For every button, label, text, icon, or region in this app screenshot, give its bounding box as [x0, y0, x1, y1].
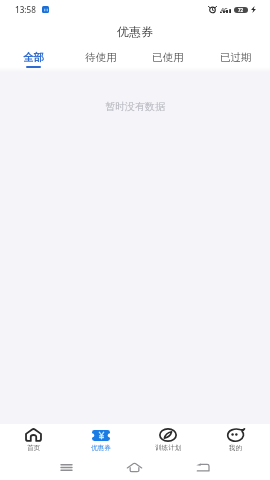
button[interactable]: 已使用 [134, 43, 202, 71]
staticText: 优惠券 [91, 444, 111, 452]
button[interactable]: Home [100, 456, 168, 480]
staticText: 已使用 [152, 51, 184, 64]
staticText: 已过期 [220, 51, 252, 64]
button[interactable]: 待使用 [67, 43, 134, 71]
staticText: 4G [221, 6, 228, 13]
staticText: 13:58 [15, 4, 36, 15]
staticText: 72 [238, 7, 244, 13]
staticText: 优惠券 [117, 24, 153, 39]
button[interactable]: 首页 [0, 424, 67, 456]
button[interactable]: 我的 [202, 424, 270, 456]
staticText: 首页 [27, 444, 41, 452]
staticText: 待使用 [85, 51, 117, 64]
button[interactable]: 全部 [0, 43, 67, 71]
staticText: 训练计划 [155, 444, 182, 452]
staticText: 我的 [229, 444, 243, 452]
button[interactable]: Recent apps [33, 456, 100, 480]
staticText: 暂时没有数据 [105, 100, 165, 113]
button[interactable]: 已过期 [202, 43, 270, 71]
button[interactable]: Back [168, 456, 236, 480]
button[interactable]: 训练计划 [134, 424, 202, 456]
staticText: 全部 [23, 51, 44, 64]
button[interactable]: 优惠券 [67, 424, 134, 456]
